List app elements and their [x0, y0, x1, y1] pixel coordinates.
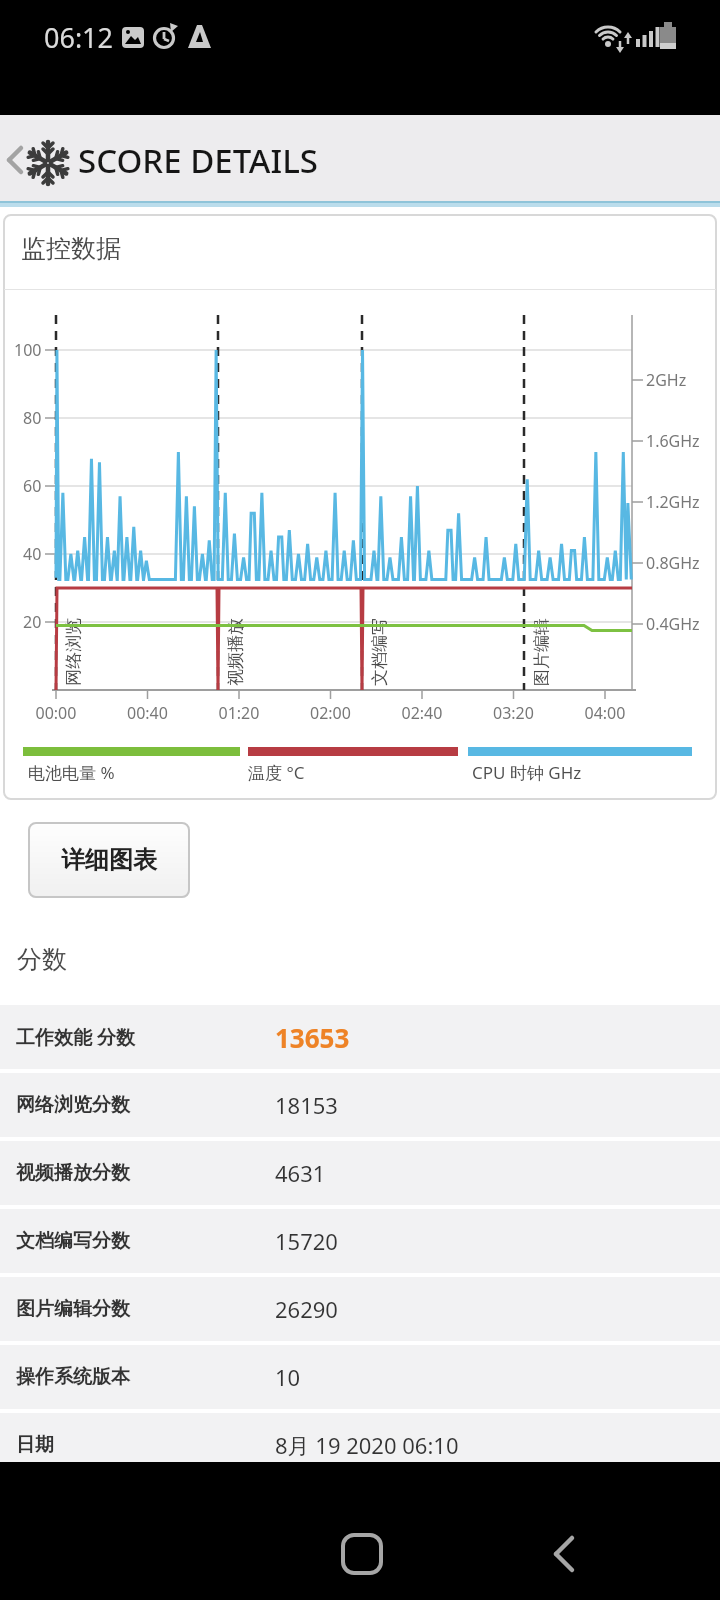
button[interactable]: 工作效能 分数	[0, 1005, 720, 1069]
staticText: 26290	[275, 1294, 338, 1324]
staticText: 4631	[275, 1158, 326, 1188]
button[interactable]: 详细图表	[28, 822, 190, 898]
staticText: 网络浏览分数	[16, 1093, 130, 1117]
button[interactable]: 视频播放分数	[0, 1141, 720, 1205]
staticText: 操作系统版本	[16, 1365, 130, 1389]
staticText: 分数	[17, 944, 67, 975]
staticText: 13653	[275, 1020, 350, 1055]
staticText: 详细图表	[61, 845, 157, 875]
staticText: 18153	[275, 1090, 338, 1120]
staticText: 日期	[16, 1433, 54, 1457]
staticText: 监控数据	[21, 233, 121, 264]
button[interactable]	[510, 1500, 620, 1600]
staticText: 文档编写分数	[16, 1229, 130, 1253]
button[interactable]: 图片编辑分数	[0, 1277, 720, 1341]
staticText: 10	[275, 1362, 301, 1392]
button[interactable]: 操作系统版本	[0, 1345, 720, 1409]
staticText: 工作效能 分数	[16, 1024, 135, 1050]
staticText: 视频播放分数	[16, 1161, 130, 1185]
button[interactable]: 网络浏览分数	[0, 1073, 720, 1137]
staticText: 8月 19 2020 06:10	[275, 1430, 459, 1460]
staticText: 06:12	[44, 19, 114, 56]
button[interactable]: 文档编写分数	[0, 1209, 720, 1273]
staticText: SCORE DETAILS	[78, 138, 318, 183]
button[interactable]: 日期	[0, 1413, 720, 1477]
button[interactable]	[307, 1500, 417, 1600]
staticText: 15720	[275, 1226, 338, 1256]
staticText: 图片编辑分数	[16, 1297, 130, 1321]
button[interactable]	[0, 115, 140, 201]
